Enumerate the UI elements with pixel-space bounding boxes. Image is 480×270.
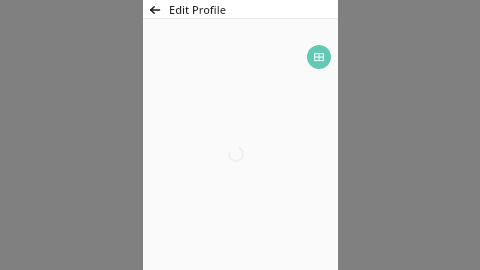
button[interactable]: Back — [147, 2, 163, 18]
staticText: Edit Profile — [169, 2, 227, 17]
button[interactable]: Edit photo — [307, 45, 331, 69]
